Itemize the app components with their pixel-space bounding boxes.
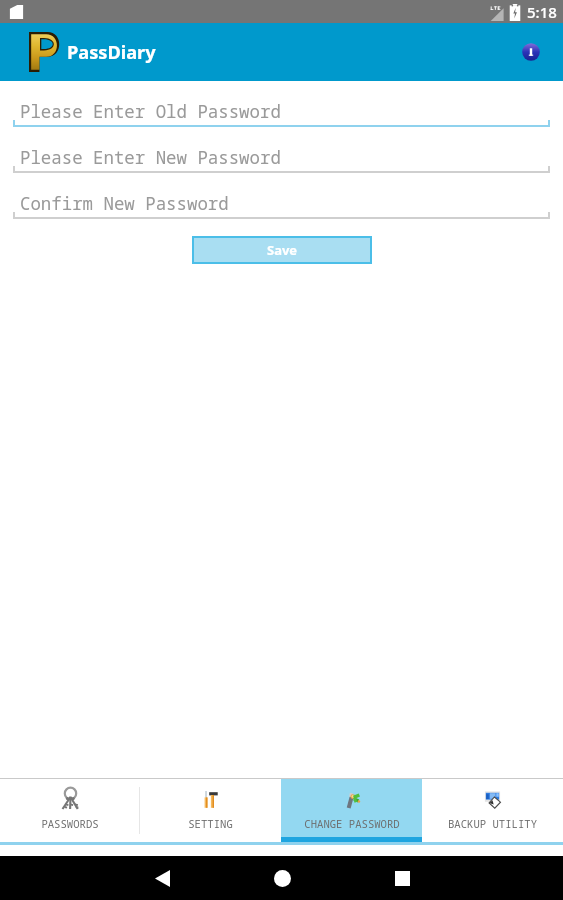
staticText: Confirm New Password <box>20 191 229 215</box>
staticText: PASSWORDS <box>41 817 99 831</box>
button[interactable]: SETTING <box>140 779 281 842</box>
button[interactable]: PASSWORDS <box>0 779 140 842</box>
staticText: 5:18 <box>527 2 557 22</box>
button[interactable]: Home <box>270 866 294 890</box>
staticText: Save <box>267 241 298 259</box>
staticText: PassDiary <box>67 40 156 65</box>
button[interactable]: CHANGE PASSWORD <box>281 779 422 842</box>
button[interactable]: BACKUP UTILITY <box>422 779 563 842</box>
staticText: Please Enter New Password <box>20 145 281 169</box>
button[interactable]: Info <box>520 41 542 63</box>
staticText: BACKUP UTILITY <box>448 817 537 831</box>
button[interactable]: Back <box>150 866 174 890</box>
staticText: SETTING <box>188 817 233 831</box>
staticText: Please Enter Old Password <box>20 99 281 123</box>
button[interactable]: Recents <box>390 866 414 890</box>
staticText: CHANGE PASSWORD <box>304 817 400 831</box>
button[interactable]: Save <box>192 236 372 264</box>
